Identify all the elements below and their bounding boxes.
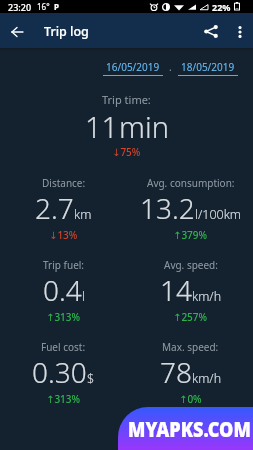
staticText: l/100km — [195, 206, 241, 223]
staticText: km/h — [192, 370, 222, 387]
button[interactable]: Back — [0, 15, 33, 48]
button[interactable]: Max. speed: — [127, 340, 253, 402]
staticText: l — [82, 288, 85, 305]
staticText: min — [119, 107, 169, 146]
staticText: 11 — [85, 107, 119, 146]
staticText: 23:20 — [8, 1, 32, 13]
staticText: 18/05/2019 — [181, 60, 235, 74]
button[interactable]: Avg. consumption: — [127, 176, 253, 238]
staticText: 78 — [160, 353, 192, 391]
staticText: Avg. speed: — [164, 258, 218, 272]
staticText: 22% — [212, 1, 231, 13]
button[interactable]: Trip fuel: — [0, 258, 127, 320]
staticText: 13.2 — [140, 189, 195, 227]
staticText: ↓75% — [112, 145, 141, 159]
staticText: Max. speed: — [162, 340, 219, 354]
staticText: 0.30 — [32, 353, 87, 391]
staticText: MYAPKS.COM — [128, 415, 251, 444]
staticText: ↑313% — [46, 392, 81, 406]
staticText: Avg. consumption: — [147, 176, 235, 190]
staticText: ↑257% — [173, 310, 208, 324]
staticText: 2.7 — [35, 189, 74, 227]
staticText: 14 — [160, 271, 192, 309]
button[interactable]: 18/05/2019 — [178, 60, 238, 76]
button[interactable]: Avg. speed: — [127, 258, 253, 320]
staticText: P — [54, 1, 59, 12]
button[interactable]: More options — [226, 18, 253, 45]
button[interactable]: Fuel cost: — [0, 340, 127, 402]
staticText: Fuel cost: — [41, 340, 86, 354]
staticText: Trip log — [44, 23, 89, 40]
staticText: ↑313% — [46, 310, 81, 324]
staticText: Trip time: — [102, 92, 151, 107]
button[interactable]: Share — [194, 15, 227, 48]
staticText: 16° — [37, 1, 50, 12]
button[interactable]: Distance: — [0, 176, 127, 238]
staticText: 0.4 — [43, 271, 82, 309]
staticText: km — [74, 206, 92, 223]
button[interactable]: 16/05/2019 — [103, 60, 163, 76]
staticText: km/h — [192, 288, 222, 305]
staticText: Distance: — [42, 176, 86, 190]
staticText: ↑379% — [173, 228, 208, 242]
staticText: ↓13% — [49, 228, 78, 242]
staticText: 16/05/2019 — [106, 60, 160, 74]
staticText: . — [169, 60, 172, 74]
staticText: $ — [87, 370, 95, 387]
staticText: Trip fuel: — [43, 258, 85, 272]
staticText: ↑0% — [179, 392, 202, 406]
